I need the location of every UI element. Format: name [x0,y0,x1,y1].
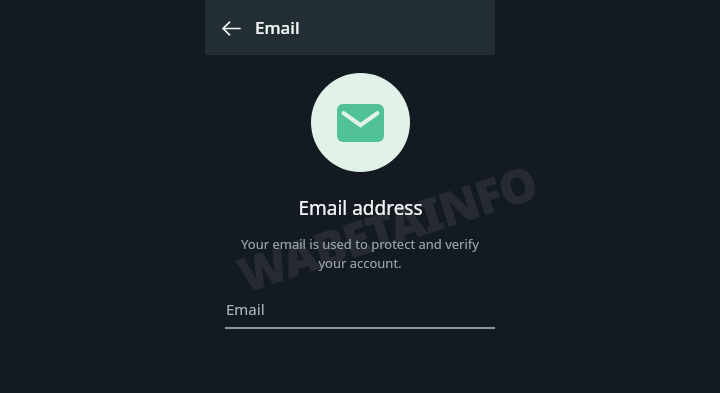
staticText: Email address [298,195,423,221]
staticText: Email [255,16,300,39]
staticText: Your email is used to protect and verify… [227,235,493,272]
button[interactable]: Back [213,10,249,46]
staticText: Email [226,299,265,319]
button[interactable]: Email [225,299,495,329]
staticText: WABETAINFO [230,150,544,306]
